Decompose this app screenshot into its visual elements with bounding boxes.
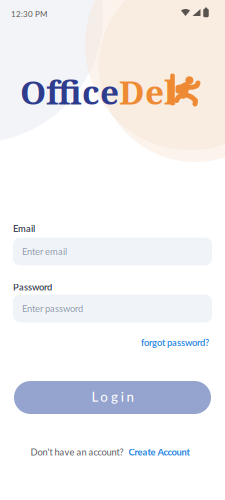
textField[interactable]: Enter email: [13, 238, 212, 265]
staticText: Enter email: [22, 246, 67, 257]
staticText: Login: [91, 389, 134, 404]
button[interactable]: Create Account: [128, 446, 189, 457]
staticText: Del: [119, 69, 176, 114]
staticText: Office: [20, 69, 119, 114]
staticText: Password: [13, 281, 52, 292]
button[interactable]: forgot password?: [141, 337, 209, 348]
staticText: Create Account: [128, 446, 189, 457]
staticText: Don't have an account?: [30, 446, 123, 457]
staticText: Enter password: [22, 303, 83, 314]
button[interactable]: Login: [14, 381, 211, 414]
staticText: Email: [13, 223, 35, 234]
staticText: forgot password?: [141, 337, 209, 348]
staticText: Enter email: [13, 238, 124, 265]
textField[interactable]: Enter password: [13, 295, 212, 322]
staticText: Enter password: [13, 295, 168, 322]
staticText: 12:30 PM: [11, 9, 47, 19]
